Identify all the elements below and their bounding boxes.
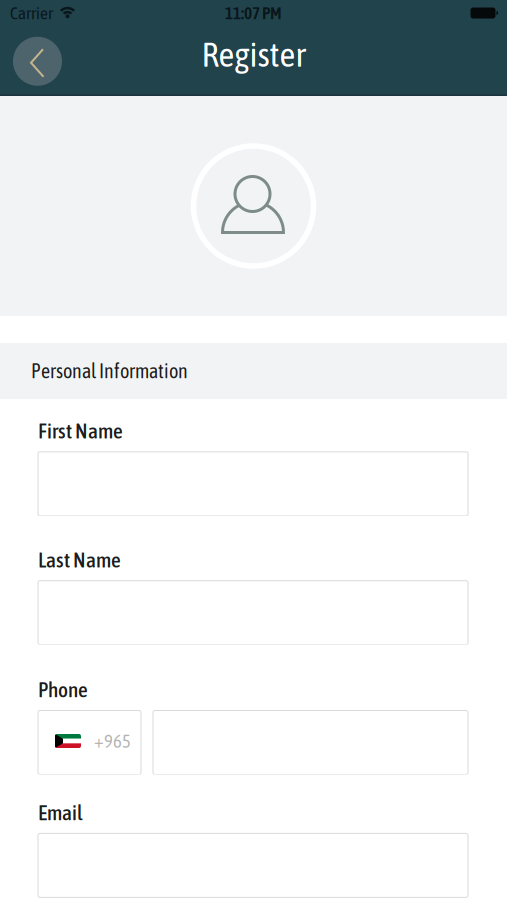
- button[interactable]: Country code: [38, 710, 141, 774]
- staticText: Register: [201, 35, 305, 73]
- staticText: Carrier: [10, 3, 53, 23]
- staticText: Personal Information: [31, 360, 188, 382]
- staticText: First Name: [38, 419, 123, 443]
- button[interactable]: Back: [13, 37, 62, 86]
- button[interactable]: Add profile photo: [193, 146, 313, 266]
- staticText: Last Name: [38, 548, 121, 572]
- staticText: Email: [38, 800, 83, 824]
- staticText: +965: [94, 731, 131, 751]
- staticText: 11:07 PM: [225, 3, 282, 23]
- staticText: Phone: [38, 678, 88, 701]
